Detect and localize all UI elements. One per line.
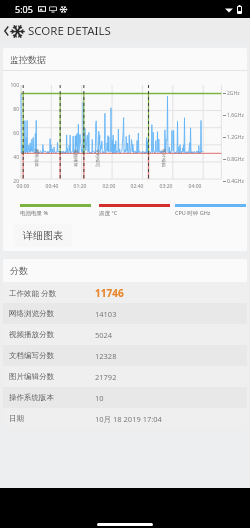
staticText: 00:40 (43, 183, 61, 190)
staticText: 1.6GHz (227, 112, 244, 119)
staticText: 文档编写分数 (9, 351, 95, 360)
staticText: 10 (95, 393, 104, 403)
staticText: 10月 18 2019 17:04 (95, 414, 162, 424)
staticText: 视频播放 (72, 149, 78, 167)
staticText: 01:20 (71, 183, 89, 190)
button[interactable]: Back to scores (0, 18, 250, 44)
staticText: 网络浏览 (33, 149, 39, 167)
staticText: 监控数据 (10, 54, 46, 65)
staticText: 5024 (95, 330, 113, 340)
staticText: 60 (5, 130, 19, 137)
staticText: 12328 (95, 351, 117, 361)
staticText: 2GHz (227, 90, 240, 97)
button[interactable]: 工作效能 分数 (3, 282, 247, 303)
staticText: 0.8GHz (227, 156, 244, 163)
staticText: 视频播放分数 (9, 330, 95, 339)
button[interactable]: 图片编辑分数 (3, 366, 247, 387)
staticText: 图片编辑 (160, 149, 166, 167)
staticText: 操作系统版本 (9, 393, 95, 402)
staticText: 80 (5, 106, 19, 113)
staticText: 网络浏览分数 (9, 309, 95, 318)
staticText: 电池电量 % (20, 209, 49, 217)
staticText: CPU 时钟 GHz (175, 209, 211, 217)
staticText: SCORE DETAILS (28, 23, 111, 39)
staticText: 详细图表 (23, 229, 63, 242)
staticText: 100 (5, 82, 19, 89)
staticText: 5:05 (15, 3, 33, 15)
staticText: 14103 (95, 309, 117, 319)
button[interactable]: 视频播放分数 (3, 324, 247, 345)
staticText: 分数 (10, 265, 28, 276)
staticText: 21792 (95, 372, 117, 382)
staticText: 文档编写 (94, 149, 100, 167)
staticText: 20 (5, 178, 19, 185)
staticText: 日期 (9, 414, 95, 423)
button[interactable]: 网络浏览分数 (3, 303, 247, 324)
staticText: 03:20 (157, 183, 175, 190)
button[interactable]: 操作系统版本 (3, 387, 247, 408)
staticText: 工作效能 分数 (9, 288, 95, 298)
button[interactable]: 文档编写分数 (3, 345, 247, 366)
staticText: 0.4GHz (227, 178, 244, 185)
staticText: 温度 °C (99, 209, 118, 217)
staticText: 1.2GHz (227, 134, 244, 141)
staticText: 00:00 (14, 183, 32, 190)
button[interactable]: 详细图表 (14, 224, 72, 247)
staticText: 40 (5, 154, 19, 161)
staticText: 02:00 (100, 183, 118, 190)
staticText: 02:40 (128, 183, 146, 190)
staticText: 11746 (95, 286, 124, 300)
staticText: 04:00 (186, 183, 204, 190)
staticText: 图片编辑分数 (9, 372, 95, 381)
button[interactable]: 日期 (3, 408, 247, 429)
